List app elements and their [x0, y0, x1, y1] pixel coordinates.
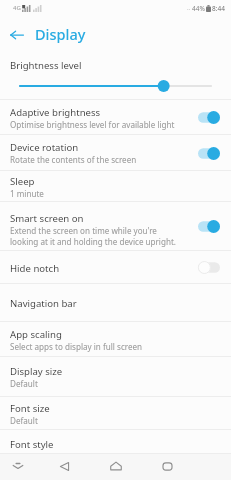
button[interactable]: Font size — [0, 397, 231, 430]
staticText: Navigation bar — [10, 297, 77, 310]
button[interactable]: Sleep — [0, 171, 231, 202]
button[interactable]: Smart screen on — [0, 202, 231, 251]
staticText: 8:44 — [212, 4, 225, 13]
button[interactable]: Display size — [0, 357, 231, 397]
staticText: Default — [10, 415, 38, 426]
staticText: 1 minute — [10, 188, 44, 199]
staticText: ‥ — [187, 4, 191, 12]
staticText: App scaling — [10, 328, 62, 341]
staticText: Brightness level — [10, 59, 82, 72]
staticText: looking at it and holding the device upr… — [10, 236, 177, 247]
staticText: Display — [35, 24, 86, 44]
button[interactable]: Recents — [155, 454, 179, 478]
button[interactable]: Toggle off — [198, 261, 220, 274]
staticText: Device rotation — [10, 141, 79, 154]
button[interactable]: Brightness slider — [0, 77, 231, 95]
button[interactable]: App scaling — [0, 322, 231, 357]
button[interactable]: Font style — [0, 430, 231, 454]
staticText: Font size — [10, 402, 50, 415]
button[interactable]: Toggle on — [198, 147, 220, 160]
staticText: Rotate the contents of the screen — [10, 154, 137, 165]
button[interactable]: Back — [52, 454, 76, 478]
staticText: Smart screen on — [10, 212, 84, 225]
button[interactable]: Adaptive brightness — [0, 100, 231, 135]
button[interactable]: Home — [104, 454, 128, 478]
staticText: Font style — [10, 438, 54, 451]
button[interactable]: Hide keyboard — [6, 454, 30, 478]
staticText: 4G — [13, 4, 21, 12]
staticText: Hide notch — [10, 262, 60, 275]
staticText: Adaptive brightness — [10, 106, 101, 119]
staticText: Optimise brightness level for available … — [10, 119, 175, 130]
button[interactable]: Toggle on — [198, 220, 220, 233]
staticText: Display size — [10, 365, 63, 378]
staticText: Extend the screen on time while you're — [10, 225, 157, 236]
staticText: Default — [10, 378, 38, 389]
button[interactable]: Back — [8, 26, 26, 44]
staticText: 44% — [192, 4, 205, 13]
button[interactable]: Toggle on — [198, 111, 220, 124]
staticText: Select apps to display in full screen — [10, 341, 143, 352]
staticText: Sleep — [10, 175, 35, 188]
button[interactable]: Navigation bar — [0, 284, 231, 322]
button[interactable]: Hide notch — [0, 251, 231, 284]
button[interactable]: Device rotation — [0, 135, 231, 171]
